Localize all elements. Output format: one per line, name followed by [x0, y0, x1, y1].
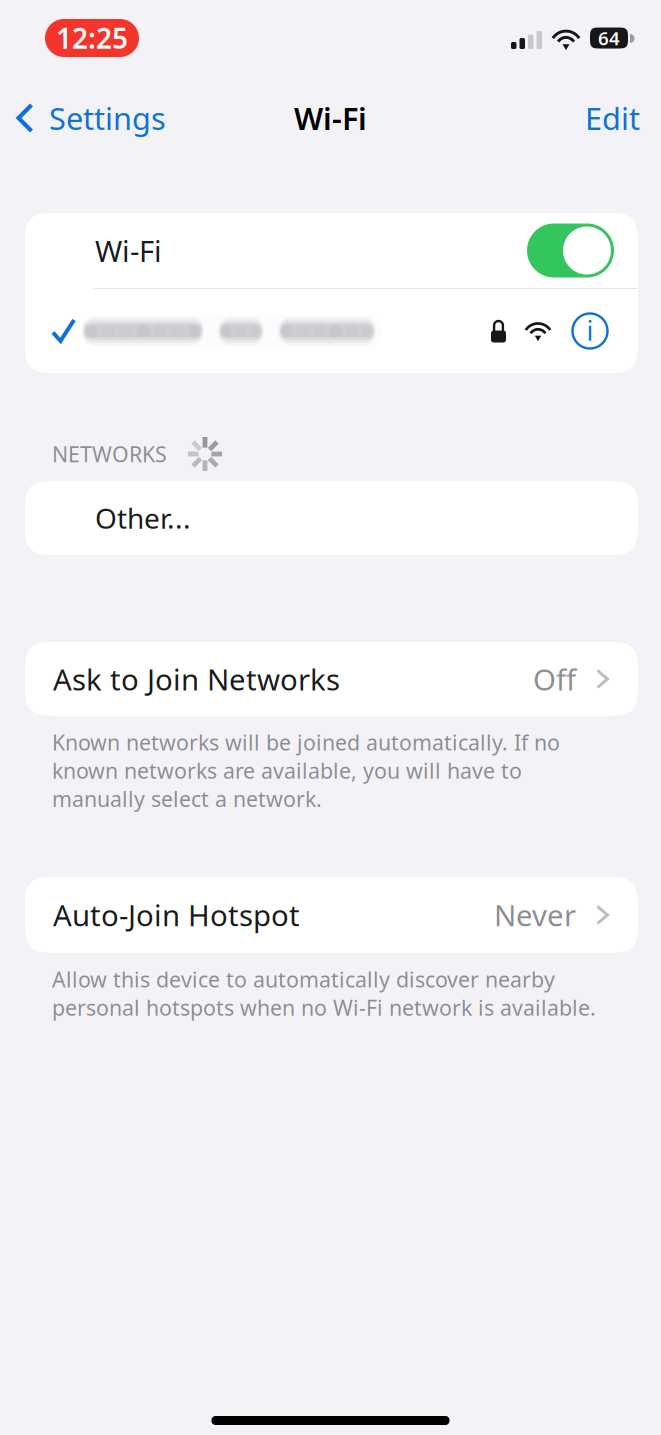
- staticText: 64: [598, 26, 620, 50]
- staticText: Edit: [585, 98, 640, 138]
- button[interactable]: Edit: [569, 90, 656, 146]
- button[interactable]: Auto-Join Hotspot: [25, 877, 638, 953]
- staticText: Never: [494, 895, 576, 934]
- button[interactable]: Ask to Join Networks: [25, 642, 638, 716]
- staticText: Settings: [49, 98, 166, 138]
- staticText: Wi-Fi: [294, 98, 367, 138]
- staticText: Off: [533, 659, 576, 698]
- staticText: Wi-Fi: [95, 231, 162, 270]
- staticText: Auto-Join Hotspot: [53, 895, 300, 934]
- staticText: Other...: [95, 499, 191, 537]
- staticText: NETWORKS: [52, 440, 167, 468]
- staticText: 12:25: [56, 19, 128, 57]
- button[interactable]: Wi-Fi: [25, 213, 638, 288]
- staticText: i: [586, 313, 593, 348]
- staticText: Ask to Join Networks: [53, 659, 340, 698]
- button[interactable]: Other...: [25, 481, 638, 555]
- button[interactable]: i: [25, 289, 638, 373]
- staticText: Allow this device to automatically disco…: [52, 965, 596, 1022]
- staticText: Known networks will be joined automatica…: [52, 728, 560, 813]
- button[interactable]: Settings: [5, 90, 180, 146]
